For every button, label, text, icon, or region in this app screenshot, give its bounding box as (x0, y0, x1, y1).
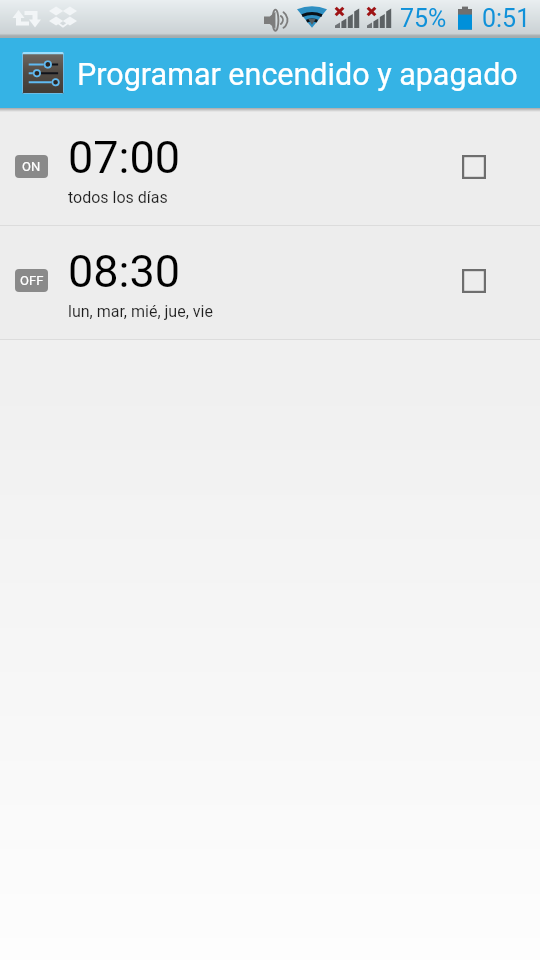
staticText: OFF (20, 273, 44, 288)
button[interactable]: Toggle alarm (462, 155, 486, 179)
staticText: 07:00 (68, 131, 181, 184)
staticText: 75% (400, 4, 447, 33)
staticText: lun, mar, mié, jue, vie (68, 302, 213, 321)
staticText: 0:51 (482, 4, 531, 33)
button[interactable]: App icon (22, 52, 64, 94)
staticText: Programar encendido y apagado (77, 57, 518, 93)
button[interactable]: Toggle alarm (462, 269, 486, 293)
staticText: 08:30 (68, 245, 181, 298)
button[interactable]: OFF (0, 226, 540, 339)
staticText: ON (22, 159, 41, 174)
button[interactable]: ON (0, 112, 540, 225)
staticText: todos los días (68, 188, 168, 207)
